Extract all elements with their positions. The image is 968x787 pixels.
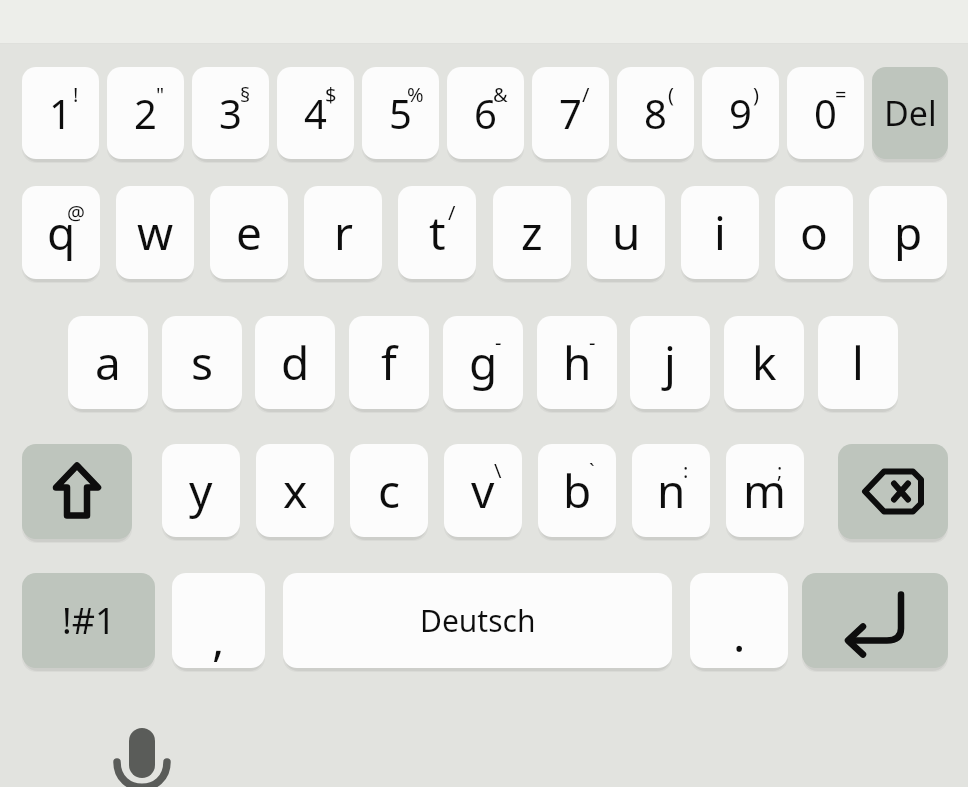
button[interactable]: !#1: [22, 573, 155, 668]
button[interactable]: 3: [192, 67, 269, 159]
staticText: .: [733, 603, 746, 666]
staticText: b: [563, 459, 592, 522]
staticText: `: [589, 457, 595, 484]
button[interactable]: q: [22, 186, 100, 279]
staticText: z: [521, 201, 543, 264]
staticText: 2: [134, 86, 157, 140]
button[interactable]: Del: [872, 67, 948, 159]
staticText: j: [664, 331, 676, 394]
staticText: v: [471, 459, 495, 522]
button[interactable]: n: [632, 444, 710, 537]
button[interactable]: ,: [172, 573, 265, 668]
staticText: c: [378, 459, 401, 522]
staticText: ,: [212, 607, 225, 668]
staticText: p: [894, 201, 923, 264]
staticText: n: [657, 459, 686, 522]
staticText: 1: [49, 86, 72, 140]
button[interactable]: c: [350, 444, 428, 537]
button[interactable]: 7: [532, 67, 609, 159]
button[interactable]: h: [537, 316, 617, 409]
button[interactable]: f: [349, 316, 429, 409]
staticText: y: [189, 459, 213, 522]
staticText: x: [283, 459, 308, 522]
staticText: 3: [219, 86, 242, 140]
staticText: 8: [644, 86, 667, 140]
staticText: 0: [814, 86, 837, 140]
button[interactable]: d: [255, 316, 335, 409]
button[interactable]: v: [444, 444, 522, 537]
staticText: &: [493, 81, 508, 108]
staticText: :: [683, 457, 689, 484]
staticText: 4: [304, 86, 327, 140]
button[interactable]: e: [210, 186, 288, 279]
button[interactable]: 4: [277, 67, 354, 159]
staticText: !: [73, 81, 79, 108]
staticText: =: [835, 81, 847, 108]
staticText: -: [495, 329, 502, 356]
staticText: 5: [389, 86, 412, 140]
staticText: @: [67, 199, 85, 226]
button[interactable]: z: [493, 186, 571, 279]
button[interactable]: b: [538, 444, 616, 537]
staticText: /: [448, 199, 456, 226]
button[interactable]: i: [681, 186, 759, 279]
staticText: w: [137, 201, 174, 264]
staticText: §: [240, 81, 251, 108]
staticText: ): [753, 81, 759, 108]
staticText: -: [589, 329, 596, 356]
staticText: Del: [884, 90, 937, 136]
button[interactable]: 6: [447, 67, 524, 159]
button[interactable]: 5: [362, 67, 439, 159]
staticText: l: [852, 331, 864, 394]
button[interactable]: x: [256, 444, 334, 537]
staticText: k: [752, 331, 777, 394]
button[interactable]: a: [68, 316, 148, 409]
staticText: a: [95, 331, 121, 394]
button[interactable]: Backspace: [838, 444, 948, 539]
staticText: r: [334, 201, 353, 264]
button[interactable]: Deutsch: [283, 573, 672, 668]
staticText: $: [325, 81, 337, 108]
staticText: s: [191, 331, 214, 394]
staticText: 6: [474, 86, 497, 140]
button[interactable]: Voice input: [105, 718, 179, 787]
staticText: e: [236, 201, 262, 264]
button[interactable]: s: [162, 316, 242, 409]
button[interactable]: u: [587, 186, 665, 279]
button[interactable]: 1: [22, 67, 99, 159]
button[interactable]: 0: [787, 67, 864, 159]
button[interactable]: m: [726, 444, 804, 537]
button[interactable]: w: [116, 186, 194, 279]
staticText: g: [469, 331, 498, 394]
button[interactable]: Enter: [802, 573, 948, 668]
button[interactable]: Shift: [22, 444, 132, 539]
staticText: 7: [559, 86, 582, 140]
staticText: 9: [729, 86, 752, 140]
staticText: %: [407, 81, 424, 108]
staticText: o: [800, 201, 828, 264]
staticText: i: [714, 201, 726, 264]
button[interactable]: t: [398, 186, 476, 279]
button[interactable]: p: [869, 186, 947, 279]
button[interactable]: 2: [107, 67, 184, 159]
button[interactable]: .: [690, 573, 788, 668]
staticText: ;: [777, 457, 783, 484]
staticText: /: [582, 81, 590, 108]
staticText: d: [281, 331, 310, 394]
button[interactable]: r: [304, 186, 382, 279]
button[interactable]: l: [818, 316, 898, 409]
staticText: u: [612, 201, 641, 264]
button[interactable]: g: [443, 316, 523, 409]
staticText: t: [429, 201, 446, 264]
button[interactable]: k: [724, 316, 804, 409]
button[interactable]: j: [630, 316, 710, 409]
staticText: (: [668, 81, 674, 108]
button[interactable]: 8: [617, 67, 694, 159]
staticText: f: [381, 331, 397, 394]
button[interactable]: o: [775, 186, 853, 279]
staticText: q: [47, 201, 76, 264]
staticText: Deutsch: [420, 600, 536, 641]
staticText: !#1: [62, 596, 116, 645]
button[interactable]: y: [162, 444, 240, 537]
button[interactable]: 9: [702, 67, 779, 159]
